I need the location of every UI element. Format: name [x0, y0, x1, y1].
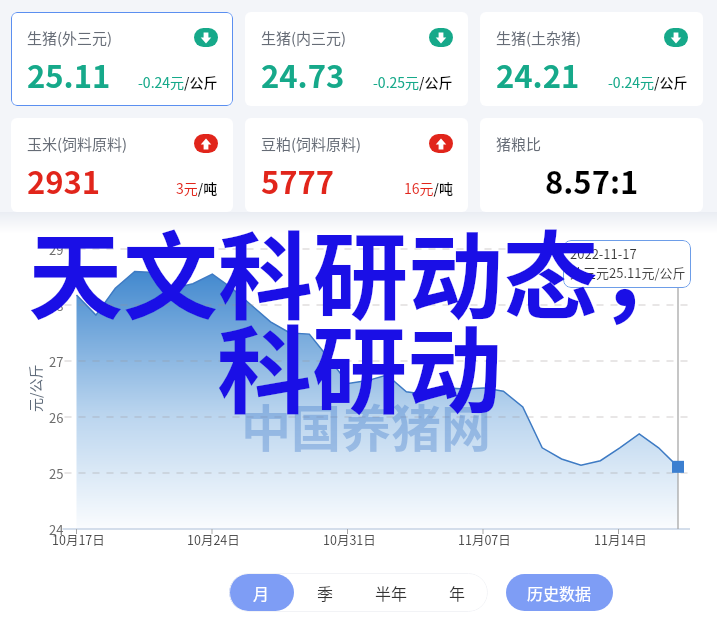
staticText: 生猪(土杂猪): [496, 27, 582, 49]
button[interactable]: 生猪(土杂猪): [480, 12, 703, 106]
staticText: 年: [449, 581, 466, 604]
staticText: -0.25元/公斤: [373, 72, 453, 92]
staticText: 26: [49, 408, 64, 427]
staticText: 5777: [261, 158, 335, 203]
staticText: 24: [49, 520, 64, 539]
button[interactable]: 豆粕(饲料原料): [245, 118, 468, 212]
button[interactable]: 玉米(饲料原料): [11, 118, 233, 212]
other: 下跌: [664, 28, 688, 47]
staticText: 2931: [27, 158, 101, 203]
staticText: 10月31日: [323, 530, 376, 548]
staticText: 11月14日: [594, 530, 647, 548]
button[interactable]: 生猪(内三元): [245, 12, 468, 106]
staticText: 元/公斤: [25, 364, 45, 412]
staticText: 8.57:1: [545, 158, 639, 203]
other: 上涨: [429, 134, 453, 153]
button[interactable]: 年: [426, 574, 488, 611]
staticText: 2022-11-17: [570, 244, 637, 263]
staticText: 24.73: [261, 52, 345, 97]
staticText: 科研动: [217, 296, 503, 434]
staticText: 豆粕(饲料原料): [261, 133, 362, 155]
staticText: 玉米(饲料原料): [27, 133, 128, 155]
button[interactable]: 季: [294, 574, 356, 611]
staticText: 半年: [375, 581, 408, 604]
staticText: 10月17日: [52, 530, 105, 548]
other: 下跌: [194, 28, 218, 47]
button[interactable]: 历史数据: [506, 574, 613, 611]
staticText: 10月24日: [187, 530, 240, 548]
staticText: 29: [49, 240, 64, 259]
staticText: 27: [49, 352, 64, 371]
staticText: 11月07日: [458, 530, 511, 548]
other: 上涨: [194, 134, 218, 153]
staticText: 25: [49, 464, 64, 483]
staticText: 天文科研动态，: [28, 202, 694, 340]
staticText: -0.24元/公斤: [608, 72, 688, 92]
staticText: 16元/吨: [404, 178, 453, 198]
staticText: 月: [253, 581, 270, 604]
staticText: 历史数据: [527, 581, 592, 604]
button[interactable]: 猪粮比: [480, 118, 703, 212]
staticText: 3元/吨: [176, 178, 218, 198]
staticText: 生猪(内三元): [261, 27, 347, 49]
staticText: 24.21: [496, 52, 580, 97]
staticText: 25.11: [27, 52, 111, 97]
button[interactable]: 月: [229, 574, 294, 611]
staticText: 猪粮比: [496, 133, 542, 155]
staticText: 28: [49, 296, 64, 315]
staticText: 季: [317, 581, 334, 604]
staticText: 生猪(外三元): [27, 27, 113, 49]
staticText: 外三元25.11元/公斤: [570, 263, 686, 282]
staticText: 中国养猪网: [241, 389, 491, 461]
staticText: -0.24元/公斤: [138, 72, 218, 92]
button[interactable]: 半年: [356, 574, 426, 611]
button[interactable]: 生猪(外三元): [11, 12, 233, 106]
other: 下跌: [429, 28, 453, 47]
